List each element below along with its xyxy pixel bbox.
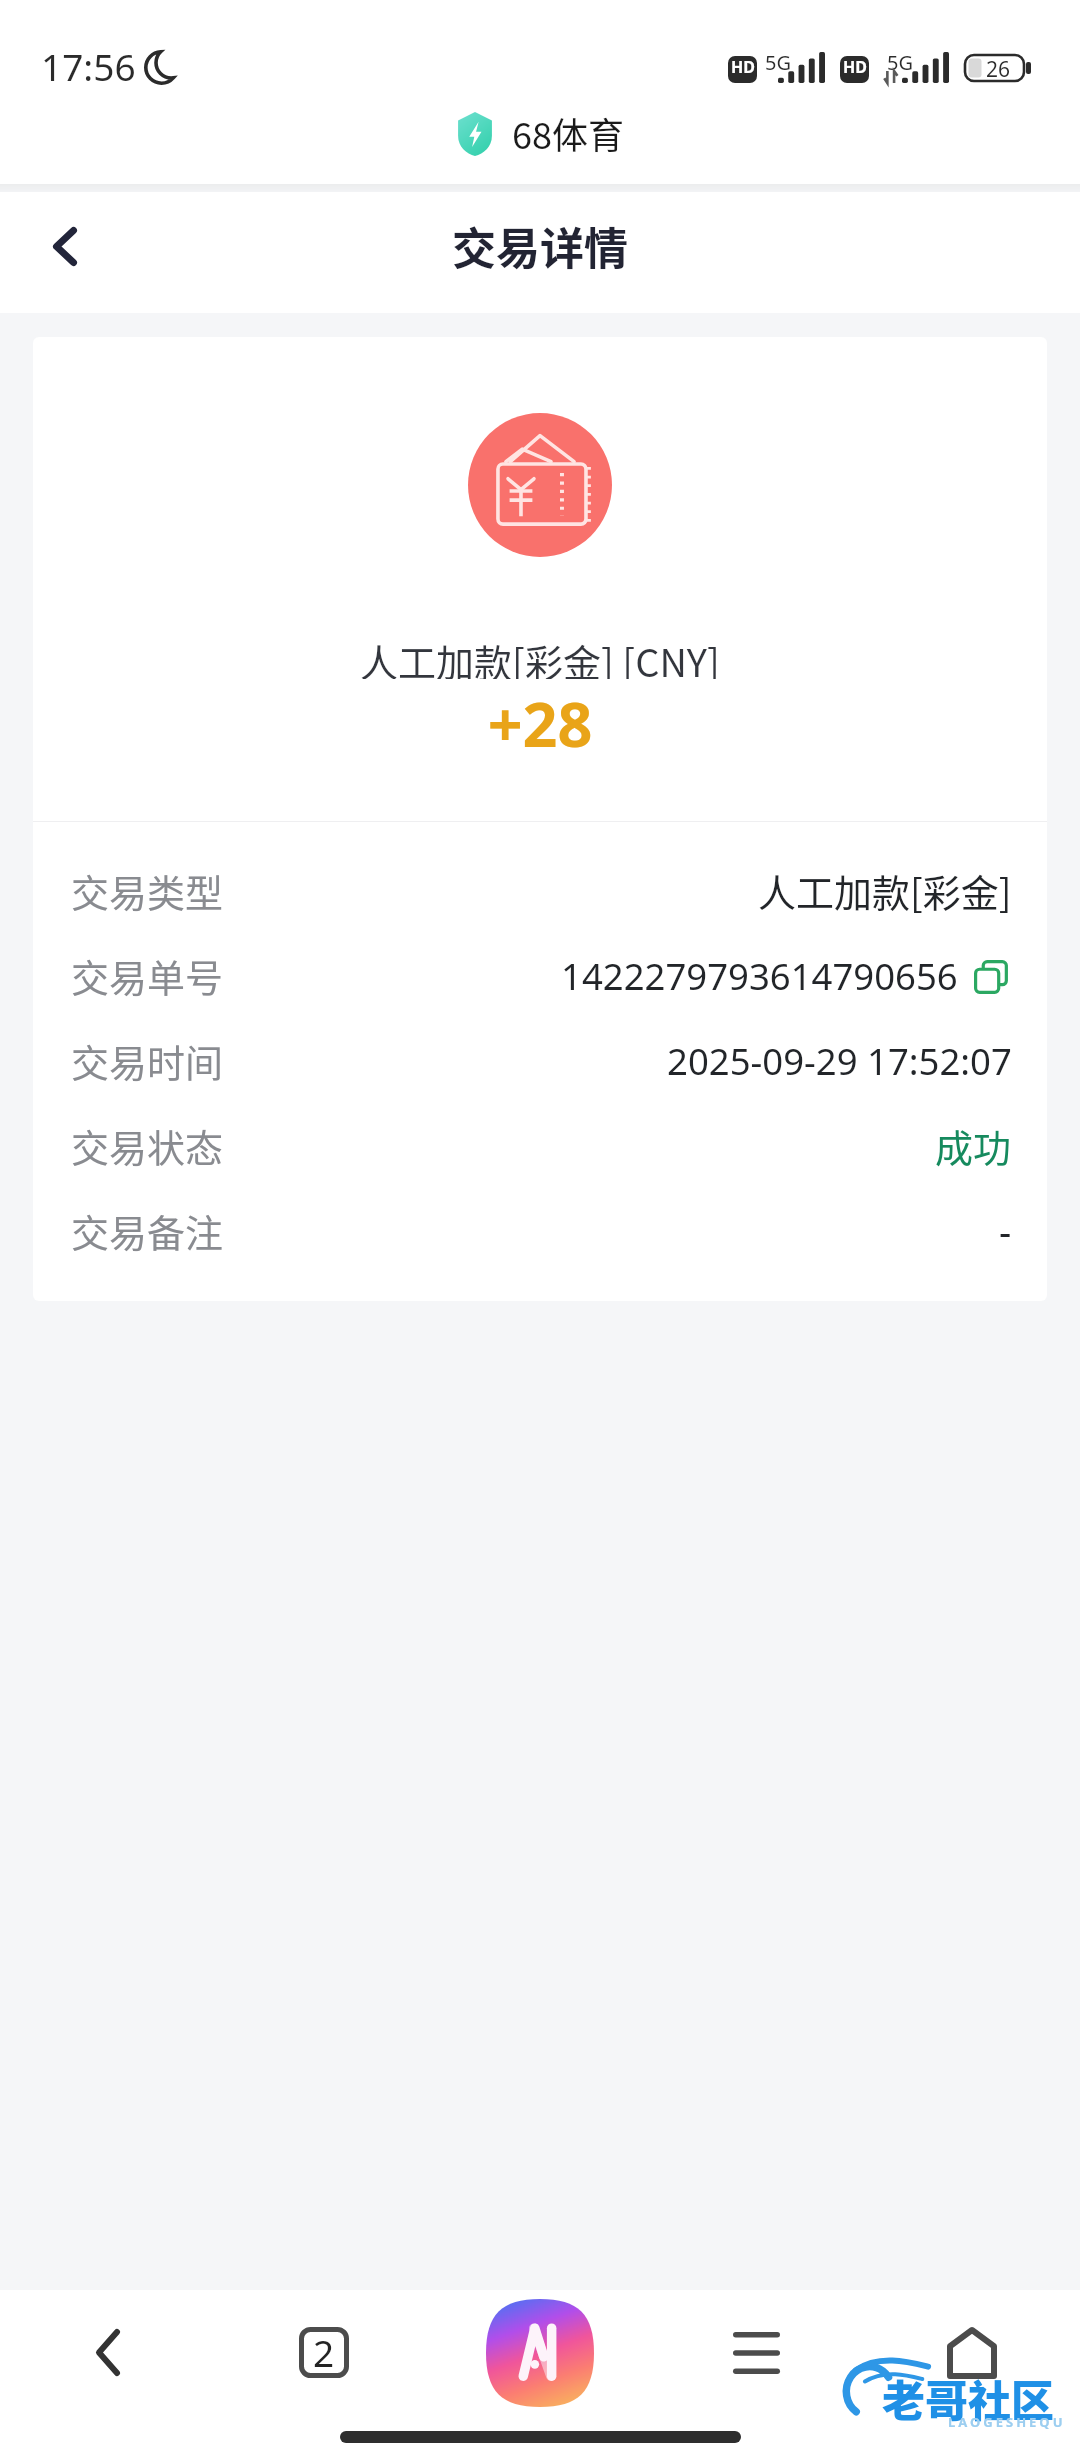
staticText: 交易详情 (452, 214, 628, 278)
staticText: LAOGESHEQU (948, 2413, 1066, 2431)
button[interactable]: Back (0, 2290, 216, 2415)
staticText: 交易类型 (71, 863, 224, 918)
staticText: 交易备注 (71, 1203, 224, 1258)
staticText: 成功 (935, 1118, 1012, 1173)
staticText: +28 (33, 682, 1047, 761)
staticText: 2 (313, 2327, 335, 2377)
staticText: 交易时间 (71, 1033, 224, 1088)
button[interactable]: AI assistant (432, 2290, 648, 2415)
staticText: 2025-09-29 17:52:07 (667, 1036, 1012, 1086)
staticText: HD (731, 56, 755, 78)
staticText: HD (843, 56, 867, 78)
staticText: 68体育 (512, 107, 624, 159)
button[interactable]: Tabs (216, 2290, 432, 2415)
staticText: 交易单号 (71, 948, 224, 1003)
staticText: 交易状态 (71, 1118, 224, 1173)
button[interactable]: Copy (968, 954, 1012, 998)
staticText: 17:56 (41, 41, 136, 91)
staticText: 老哥社区 (882, 2367, 1054, 2429)
staticText: 1422279793614790656 (561, 951, 958, 1001)
button[interactable]: Back (21, 202, 109, 290)
staticText: 5G (887, 49, 913, 76)
button[interactable]: Menu (648, 2290, 864, 2415)
staticText: - (999, 1205, 1012, 1257)
staticText: 人工加款[彩金] (758, 863, 1012, 918)
staticText: 26 (986, 55, 1011, 81)
staticText: 5G (765, 49, 791, 76)
staticText: 人工加款[彩金] [CNY] (33, 633, 1047, 679)
button[interactable]: Home (864, 2290, 1080, 2415)
